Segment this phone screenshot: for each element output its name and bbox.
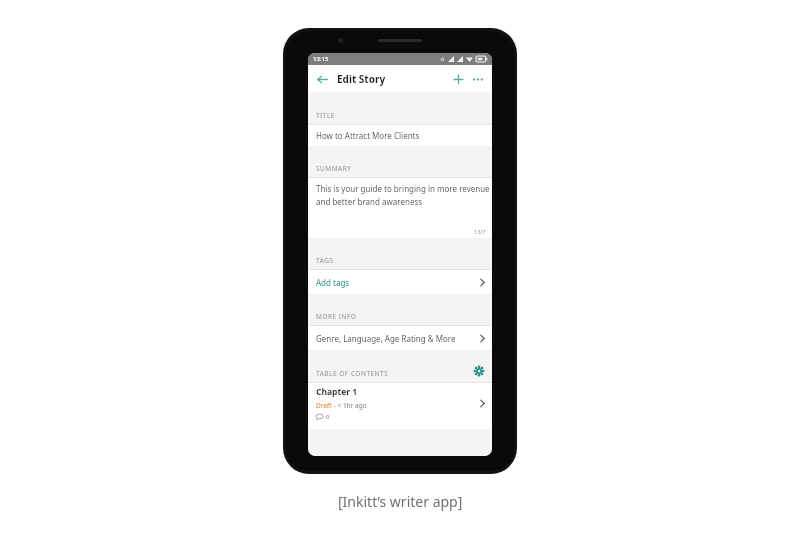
staticText: 13/7 (474, 228, 486, 235)
button[interactable]: More options (469, 70, 487, 88)
staticText: [Inkitt’s writer app] (338, 492, 463, 511)
staticText: TAGS (316, 256, 334, 265)
staticText: 13:15 (313, 55, 329, 63)
button[interactable]: Add (449, 70, 467, 88)
button[interactable]: Settings (471, 363, 487, 379)
staticText: MORE INFO (316, 312, 357, 321)
staticText: Draft (316, 401, 332, 410)
staticText: and better brand awareness (316, 196, 423, 207)
button[interactable]: Back (312, 69, 332, 89)
staticText: SUMMARY (316, 164, 352, 173)
staticText: Genre, Language, Age Rating & More (316, 333, 480, 344)
staticText: This is your guide to bringing in more r… (316, 183, 490, 194)
staticText: How to Attract More Clients (316, 130, 420, 141)
button[interactable]: Add tags (308, 270, 492, 294)
staticText: TITLE (316, 111, 335, 120)
staticText: Add tags (316, 277, 480, 288)
staticText: TABLE OF CONTENTS (316, 369, 389, 378)
staticText: - < 1hr ago (332, 401, 367, 410)
button[interactable]: How to Attract More Clients (308, 125, 492, 146)
staticText: Edit Story (337, 72, 386, 86)
staticText: Chapter 1 (316, 386, 358, 398)
button[interactable]: Genre, Language, Age Rating & More (308, 326, 492, 350)
button[interactable]: Chapter 1 (308, 383, 492, 423)
staticText: 0 (326, 413, 330, 421)
button[interactable]: This is your guide to bringing in more r… (308, 178, 492, 238)
